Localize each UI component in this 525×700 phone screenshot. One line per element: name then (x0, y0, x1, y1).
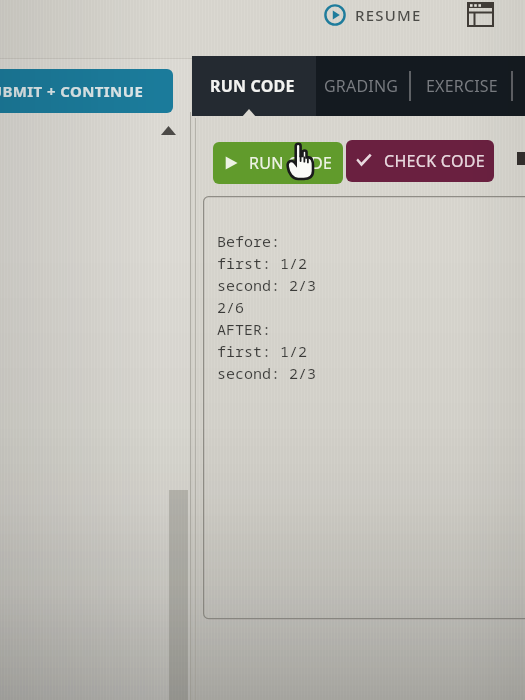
button[interactable]: SUBMIT + CONTINUE (0, 69, 173, 113)
staticText: Before: first: 1/2 second: 2/3 2/6 AFTER… (217, 231, 317, 383)
staticText: EXERCISE (426, 75, 498, 97)
staticText: CHECK CODE (384, 150, 485, 172)
button[interactable]: RUN CODE (213, 142, 343, 184)
button[interactable]: RESUME (324, 4, 422, 26)
staticText: RUN CODE (210, 75, 295, 97)
staticText: RESUME (355, 5, 422, 25)
staticText: SUBMIT + CONTINUE (0, 81, 144, 101)
button[interactable]: Panel layout (462, 0, 498, 32)
staticText: GRADING (324, 75, 399, 97)
button[interactable]: EXERCISE (422, 56, 502, 116)
button[interactable]: CHECK CODE (346, 140, 494, 182)
button[interactable]: GRADING (322, 56, 400, 116)
staticText: RUN CODE (249, 152, 333, 174)
button[interactable]: RUN CODE (206, 56, 298, 116)
